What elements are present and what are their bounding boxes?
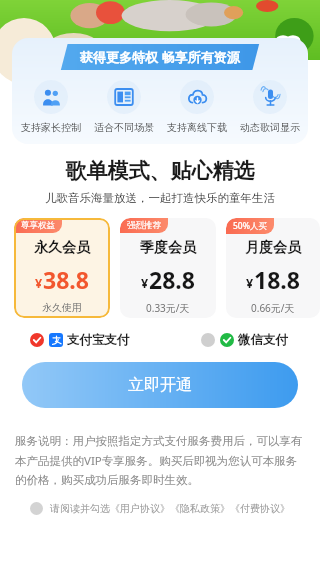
staticText: 月度会员 [245,239,301,257]
staticText: 28.8 [149,264,195,295]
button[interactable]: Select payment [201,332,288,348]
button[interactable]: 强烈推荐 [120,218,216,318]
button[interactable]: Select payment [30,332,201,348]
staticText: 歌单模式、贴心精选 [0,158,320,184]
staticText: 支持离线下载 [167,121,227,134]
staticText: 0.66元/天 [251,301,295,315]
staticText: 0.33元/天 [146,301,190,315]
button[interactable]: 尊享权益 [14,218,110,318]
staticText: 永久使用 [42,301,82,314]
staticText: 38.8 [43,264,89,295]
button[interactable]: Agree to terms [30,502,290,515]
button[interactable]: 支持家长控制 [14,80,87,134]
button[interactable]: 50%人买 [226,218,320,318]
staticText: ¥ [246,275,254,292]
button[interactable]: 支持离线下载 [160,80,233,134]
staticText: 获得更多特权 畅享所有资源 [80,48,240,66]
button[interactable]: 动态歌词显示 [233,80,306,134]
staticText: 永久会员 [34,239,90,257]
staticText: 50%人买 [233,220,267,232]
staticText: 服务说明：用户按照指定方式支付服务费用后，可以享有本产品提供的VIP专享服务。购… [15,434,305,488]
staticText: 18.8 [254,264,300,295]
staticText: 强烈推荐 [127,220,161,231]
staticText: 立即开通 [128,375,192,395]
staticText: 尊享权益 [21,220,55,231]
staticText: 儿歌音乐海量放送，一起打造快乐的童年生活 [0,191,320,205]
other: Select payment [201,333,215,347]
staticText: 微信支付 [238,332,288,348]
staticText: 支持家长控制 [21,121,81,134]
other: Select payment [30,333,44,347]
staticText: 动态歌词显示 [240,121,300,134]
button[interactable]: 立即开通 [22,362,298,408]
other: Agree to terms [30,502,43,515]
staticText: 请阅读并勾选《用户协议》《隐私政策》《付费协议》 [50,502,290,515]
staticText: 季度会员 [140,239,196,257]
staticText: ¥ [35,275,43,292]
staticText: ¥ [141,275,149,292]
staticText: 适合不同场景 [94,121,154,134]
button[interactable]: 适合不同场景 [87,80,160,134]
staticText: 支付宝支付 [67,332,130,348]
